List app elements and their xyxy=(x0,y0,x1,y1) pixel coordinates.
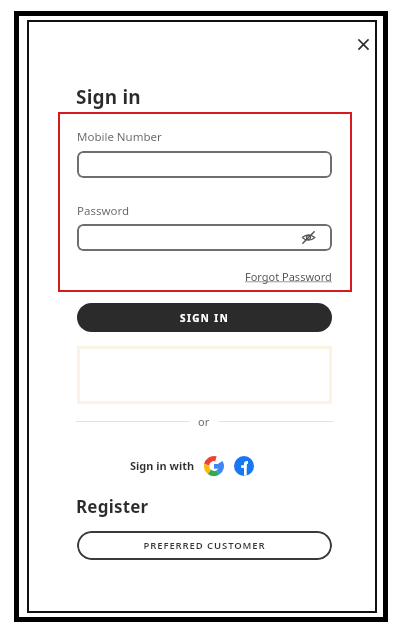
button[interactable]: Password field xyxy=(77,224,332,251)
button[interactable]: Show password xyxy=(298,227,319,248)
button[interactable]: Mobile Number field xyxy=(77,151,332,178)
button[interactable]: SIGN IN xyxy=(77,303,332,332)
staticText: Password xyxy=(77,203,130,219)
staticText: or xyxy=(198,414,210,429)
staticText: PREFERRED CUSTOMER xyxy=(143,539,266,552)
button[interactable]: Close xyxy=(352,33,374,55)
staticText: Forgot Password xyxy=(245,269,332,284)
staticText: Sign in with xyxy=(130,458,195,473)
staticText: Register xyxy=(76,495,149,518)
button[interactable]: PREFERRED CUSTOMER xyxy=(77,531,332,560)
button[interactable]: Forgot Password xyxy=(240,268,332,284)
button[interactable]: Sign in with Facebook xyxy=(233,455,254,476)
staticText: SIGN IN xyxy=(180,311,230,325)
staticText: Sign in xyxy=(76,84,141,110)
staticText: Mobile Number xyxy=(77,129,162,145)
button[interactable]: Sign in with Google xyxy=(203,455,224,476)
